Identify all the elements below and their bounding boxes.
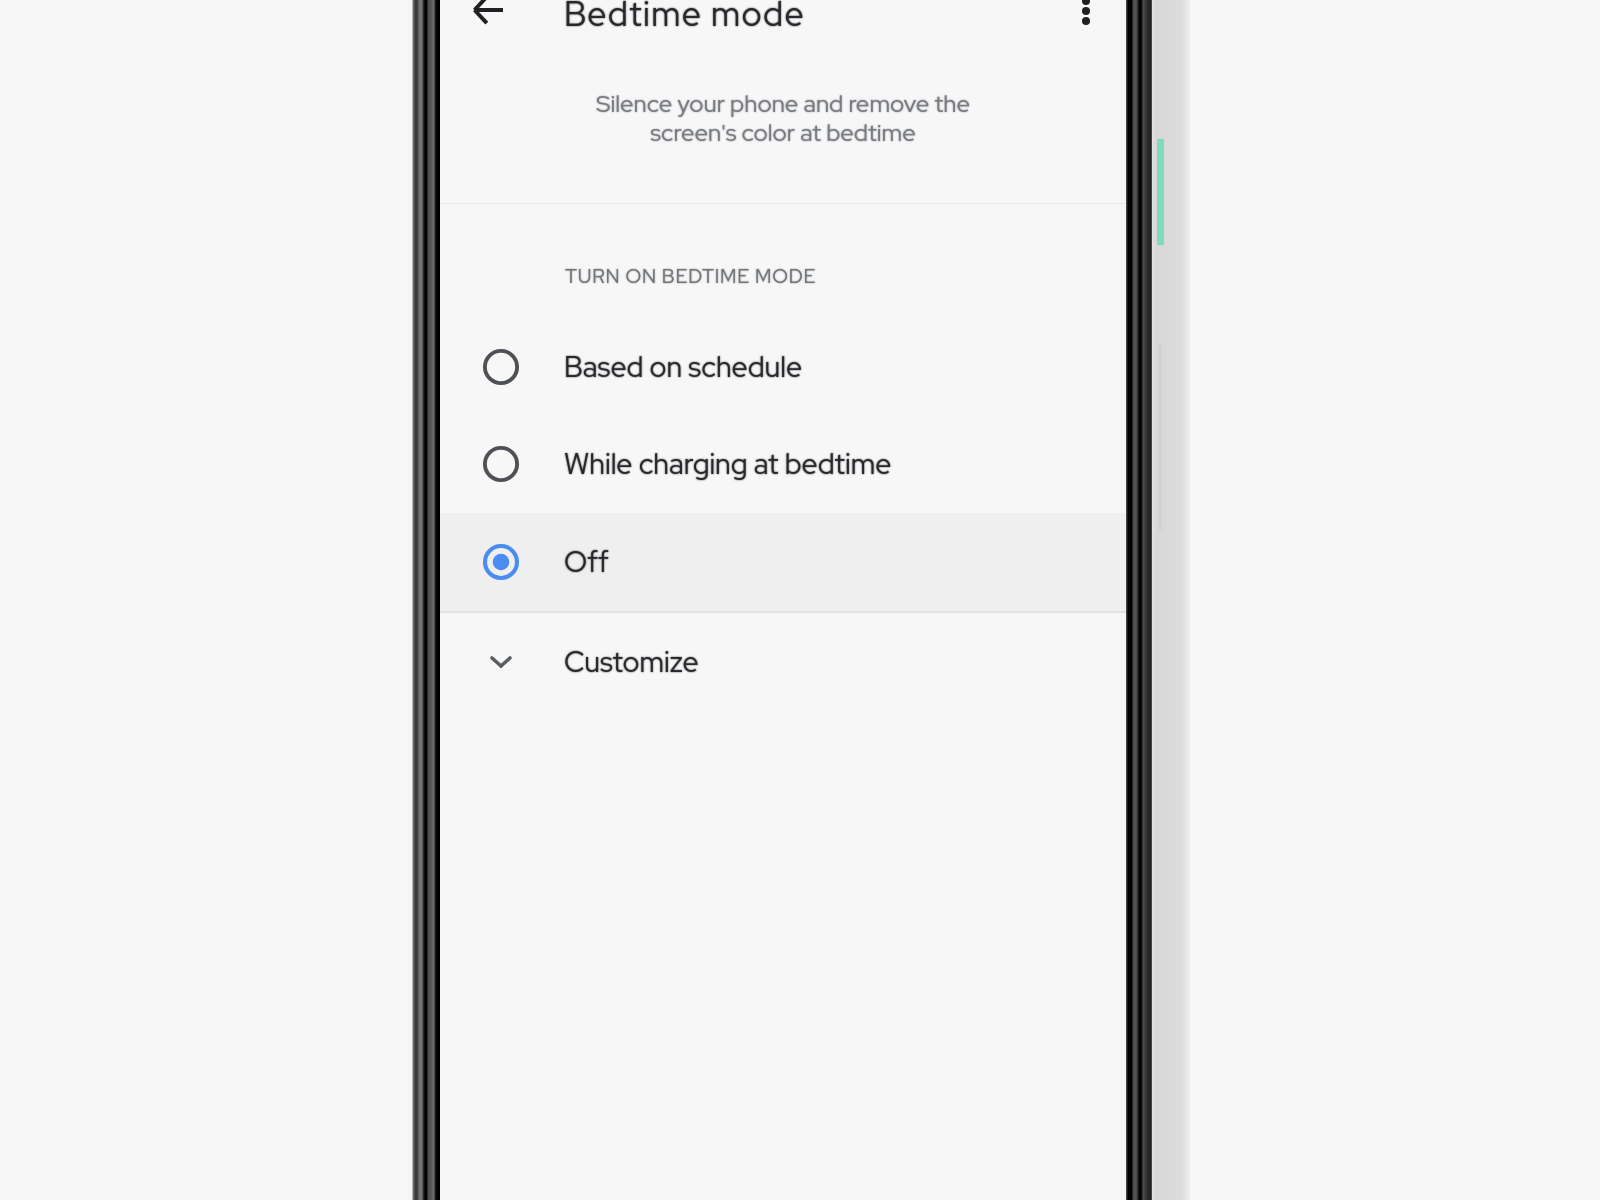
button[interactable]: Customize bbox=[440, 612, 1126, 712]
button[interactable]: While charging at bedtime bbox=[440, 415, 1126, 513]
staticText: Bedtime mode bbox=[564, 0, 805, 36]
staticText: TURN ON BEDTIME MODE bbox=[565, 263, 817, 289]
staticText: While charging at bedtime bbox=[564, 445, 892, 483]
staticText: Silence your phone and remove the screen… bbox=[440, 88, 1126, 149]
button[interactable]: More options bbox=[1054, 0, 1118, 43]
button[interactable]: Navigate up bbox=[456, 0, 520, 42]
staticText: Off bbox=[564, 543, 609, 581]
button[interactable]: Off bbox=[440, 513, 1126, 611]
staticText: Based on schedule bbox=[564, 348, 803, 386]
staticText: Customize bbox=[564, 643, 699, 681]
button[interactable]: Based on schedule bbox=[440, 318, 1126, 416]
